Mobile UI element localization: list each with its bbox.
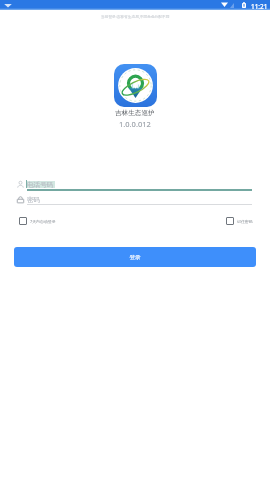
button[interactable]: 密码 <box>0 193 270 208</box>
button[interactable]: 7天内自动登录 <box>19 217 56 225</box>
staticText: 密码 <box>27 196 41 204</box>
button[interactable]: 电话号码 <box>0 178 270 193</box>
staticText: 吉林生态巡护 <box>115 109 155 117</box>
staticText: 1.0.0.012 <box>119 119 151 128</box>
staticText: 记住密码 <box>237 219 253 224</box>
staticText: 电话号码 <box>27 181 54 189</box>
other: Notification <box>4 3 12 8</box>
button[interactable]: 登录 <box>14 247 256 267</box>
staticText: 7天内自动登录 <box>30 219 56 224</box>
staticText: 当前登录:吉林省生态局,不同角色分配不同 <box>101 14 170 19</box>
button[interactable]: 记住密码 <box>226 217 253 225</box>
staticText: 登录 <box>129 254 141 261</box>
staticText: 11:21 <box>251 2 268 11</box>
